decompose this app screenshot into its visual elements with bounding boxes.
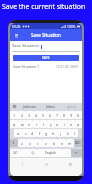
staticText: z bbox=[21, 141, 23, 146]
button[interactable]: c bbox=[34, 139, 42, 147]
button[interactable]: . bbox=[63, 149, 71, 157]
button[interactable]: 6 bbox=[47, 111, 54, 119]
staticText: c bbox=[37, 141, 39, 146]
staticText: d bbox=[31, 131, 34, 136]
staticText: 8 bbox=[63, 113, 66, 118]
staticText: ↵ bbox=[75, 151, 79, 155]
button[interactable]: q bbox=[10, 120, 18, 128]
staticText: k bbox=[67, 131, 69, 136]
staticText: l bbox=[74, 131, 75, 136]
button[interactable]: u bbox=[54, 120, 61, 128]
button[interactable]: k bbox=[64, 129, 71, 137]
staticText: e bbox=[28, 122, 31, 127]
button[interactable]: 0 bbox=[75, 111, 82, 119]
button[interactable]: 7 bbox=[54, 111, 61, 119]
staticText: r bbox=[36, 122, 38, 127]
button[interactable]: w bbox=[18, 120, 26, 128]
staticText: 12:01:49 28/01 bbox=[56, 65, 79, 69]
button[interactable]: , bbox=[21, 149, 29, 157]
button[interactable]: d bbox=[29, 129, 36, 137]
button[interactable]: h bbox=[50, 129, 57, 137]
button[interactable]: y bbox=[47, 120, 54, 128]
staticText: a bbox=[17, 131, 20, 136]
staticText: g bbox=[45, 131, 48, 136]
staticText: Save Situation 1 bbox=[13, 64, 40, 69]
staticText: 2 bbox=[21, 113, 24, 118]
button[interactable]: j bbox=[57, 129, 64, 137]
button[interactable]: Home bbox=[34, 158, 58, 176]
staticText: 7 bbox=[56, 113, 59, 118]
button[interactable]: b bbox=[50, 139, 58, 147]
button[interactable]: !#1 bbox=[10, 149, 21, 157]
staticText: b bbox=[53, 141, 56, 146]
staticText: o bbox=[70, 122, 73, 127]
button[interactable]: Recent apps bbox=[58, 158, 82, 176]
button[interactable]: ⇧ bbox=[10, 139, 18, 147]
staticText: f bbox=[39, 131, 41, 136]
button[interactable]: Open navigation menu bbox=[13, 32, 20, 39]
button[interactable]: p bbox=[75, 120, 82, 128]
staticText: Save Situation bbox=[31, 32, 61, 38]
staticText: ⌦ bbox=[75, 141, 81, 145]
button[interactable]: 4 bbox=[33, 111, 40, 119]
button[interactable]: Keyboard settings bbox=[12, 104, 17, 109]
button[interactable]: English bbox=[37, 149, 63, 157]
staticText: 09:25 bbox=[12, 24, 21, 28]
button[interactable]: g bbox=[43, 129, 50, 137]
staticText: 5 bbox=[42, 113, 45, 118]
staticText: x bbox=[29, 141, 31, 146]
button[interactable]: x bbox=[26, 139, 34, 147]
staticText: gfmg bbox=[67, 104, 76, 109]
staticText: v bbox=[45, 141, 47, 146]
button[interactable]: m bbox=[66, 139, 74, 147]
button[interactable]: n bbox=[58, 139, 66, 147]
staticText: 4 bbox=[35, 113, 38, 118]
button[interactable]: v bbox=[42, 139, 50, 147]
staticText: . bbox=[67, 151, 68, 155]
staticText: SAVE bbox=[42, 56, 50, 60]
button[interactable]: 2 bbox=[18, 111, 26, 119]
staticText: Johnson bbox=[23, 104, 36, 109]
staticText: s bbox=[25, 131, 27, 136]
button[interactable]: z bbox=[18, 139, 26, 147]
button[interactable]: ⌦ bbox=[74, 139, 82, 147]
staticText: , bbox=[25, 151, 26, 155]
button[interactable]: e bbox=[26, 120, 33, 128]
button[interactable]: o bbox=[68, 120, 75, 128]
staticText: 3 bbox=[28, 113, 31, 118]
staticText: w bbox=[21, 122, 24, 127]
button[interactable]: Enter bbox=[71, 149, 82, 157]
button[interactable]: 8 bbox=[61, 111, 68, 119]
button[interactable]: 3 bbox=[26, 111, 33, 119]
staticText: ☺ bbox=[31, 151, 35, 155]
button[interactable]: Back bbox=[10, 158, 34, 176]
button[interactable]: i bbox=[61, 120, 68, 128]
button[interactable]: t bbox=[40, 120, 47, 128]
staticText: 1 bbox=[13, 113, 16, 118]
button[interactable]: r bbox=[33, 120, 40, 128]
staticText: q bbox=[13, 122, 16, 127]
staticText: p bbox=[77, 122, 80, 127]
button[interactable]: SAVE bbox=[13, 55, 79, 61]
staticText: h bbox=[52, 131, 55, 136]
staticText: m bbox=[68, 141, 72, 146]
staticText: y bbox=[50, 122, 52, 127]
button[interactable]: 1 bbox=[10, 111, 18, 119]
staticText: j bbox=[60, 131, 61, 136]
staticText: !#1 bbox=[13, 151, 18, 155]
staticText: Save Situation bbox=[12, 43, 40, 49]
button[interactable]: ☺ bbox=[29, 149, 37, 157]
staticText: n bbox=[61, 141, 64, 146]
button[interactable]: 5 bbox=[40, 111, 47, 119]
staticText: English bbox=[45, 151, 56, 155]
button[interactable]: s bbox=[22, 129, 29, 137]
staticText: i bbox=[64, 122, 65, 127]
staticText: ⇧ bbox=[12, 141, 16, 145]
staticText: 0 bbox=[77, 113, 80, 118]
staticText: Johns bbox=[46, 104, 55, 109]
button[interactable]: f bbox=[36, 129, 43, 137]
button[interactable]: 9 bbox=[68, 111, 75, 119]
button[interactable]: a bbox=[14, 129, 22, 137]
button[interactable]: Save Situation 1 bbox=[10, 63, 82, 70]
button[interactable]: l bbox=[71, 129, 78, 137]
